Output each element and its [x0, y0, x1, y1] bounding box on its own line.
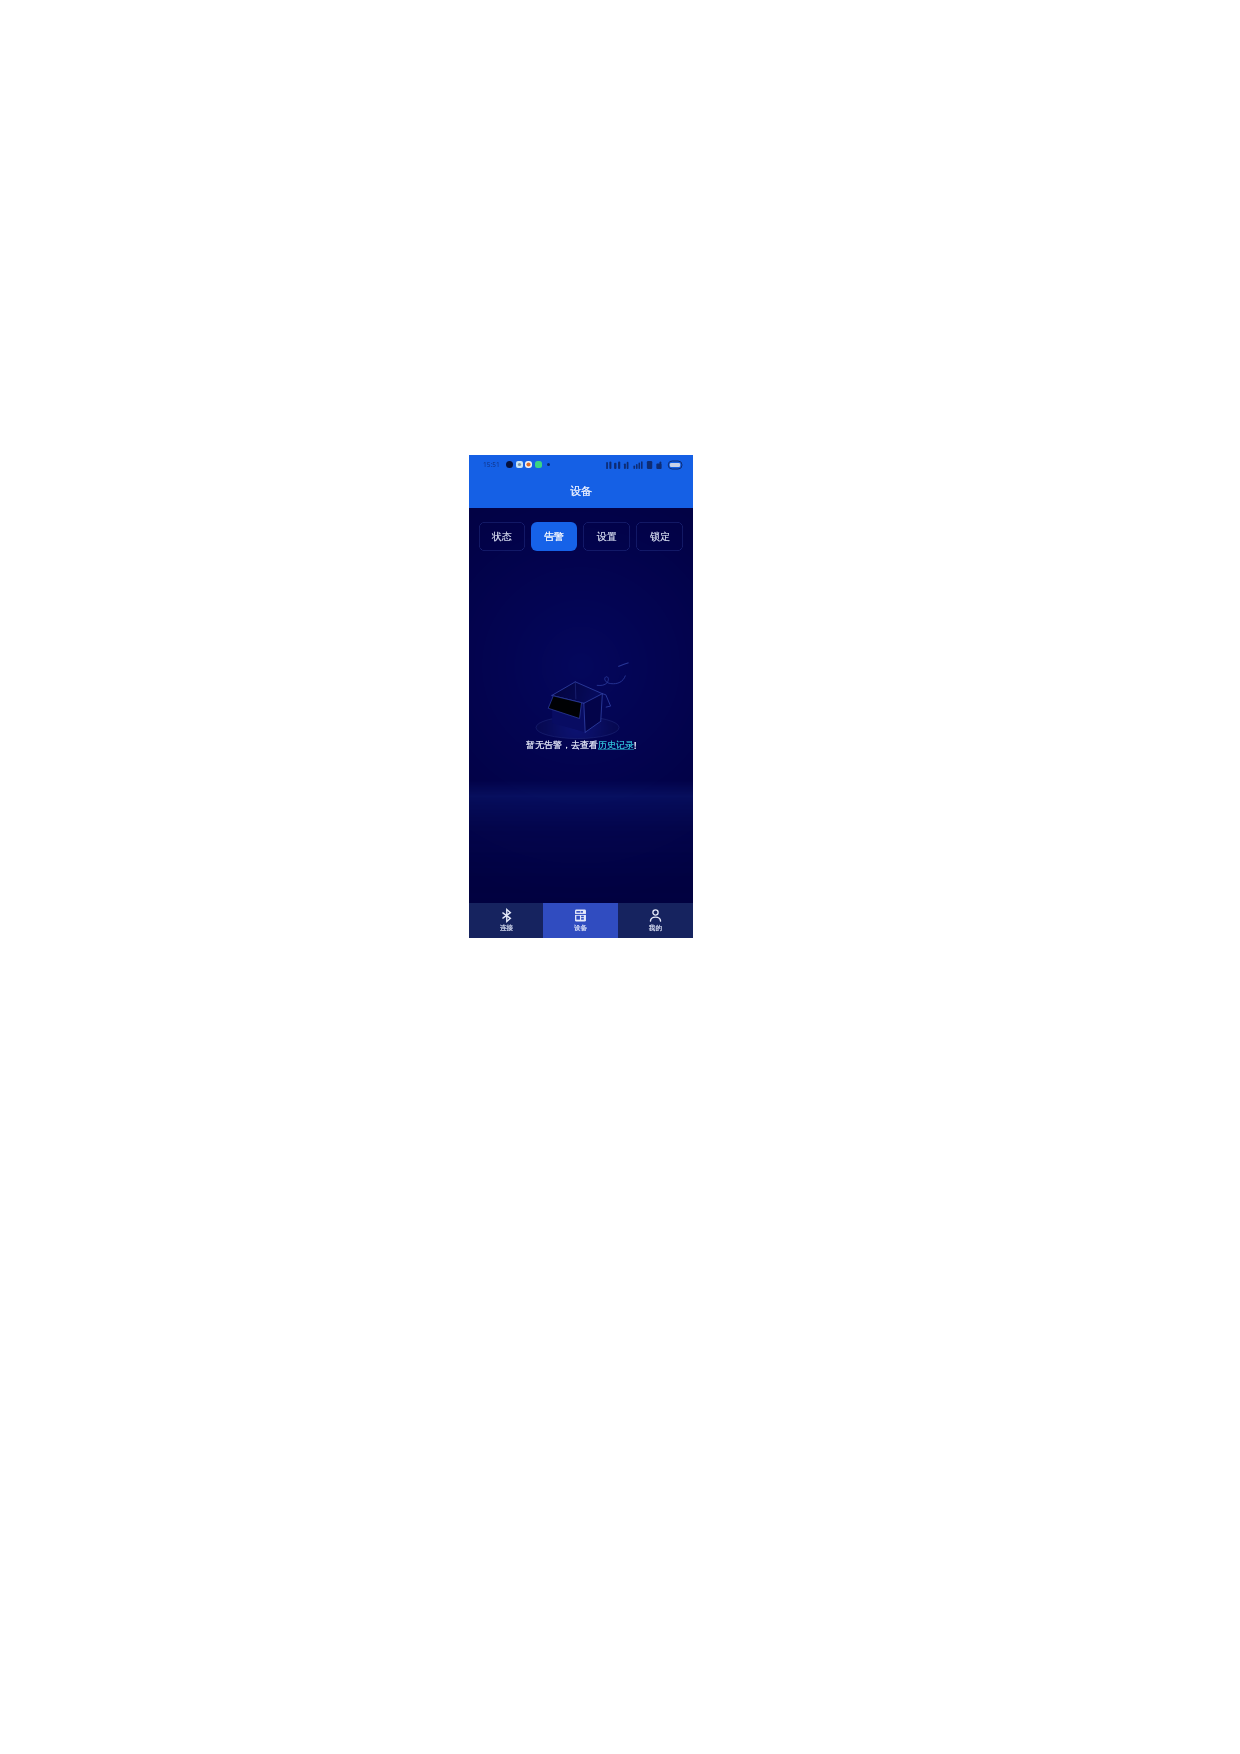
- button[interactable]: 告警: [531, 522, 577, 551]
- staticText: 设备: [570, 484, 592, 498]
- staticText: 锁定: [650, 530, 670, 543]
- button[interactable]: 状态: [479, 522, 525, 551]
- button[interactable]: Devices: [543, 903, 618, 938]
- button[interactable]: 锁定: [636, 522, 683, 551]
- button[interactable]: 历史记录: [598, 739, 634, 750]
- staticText: !: [634, 739, 637, 751]
- button[interactable]: 设置: [583, 522, 630, 551]
- button[interactable]: Connect: [469, 903, 543, 938]
- staticText: 连接: [500, 924, 513, 932]
- staticText: 状态: [492, 530, 512, 543]
- staticText: 15:51: [483, 460, 500, 469]
- staticText: 暂无告警，去查看: [526, 739, 598, 750]
- staticText: 设置: [597, 530, 617, 543]
- staticText: 告警: [544, 530, 564, 543]
- staticText: 设备: [574, 924, 587, 932]
- button[interactable]: Profile: [618, 903, 693, 938]
- staticText: 我的: [649, 924, 662, 932]
